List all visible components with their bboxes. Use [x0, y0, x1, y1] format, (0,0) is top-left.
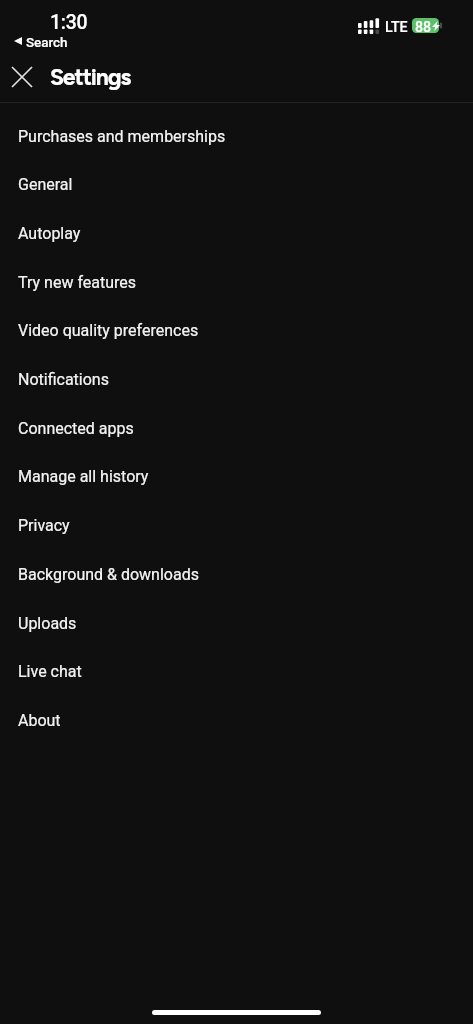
staticText: Privacy — [18, 516, 70, 535]
button[interactable]: Manage all history — [0, 452, 473, 501]
staticText: General — [18, 175, 73, 194]
staticText: About — [18, 711, 61, 730]
staticText: Settings — [50, 63, 131, 91]
button[interactable]: Uploads — [0, 599, 473, 648]
staticText: Try new features — [18, 273, 137, 292]
staticText: Background & downloads — [18, 565, 199, 584]
button[interactable]: Connected apps — [0, 404, 473, 453]
staticText: Connected apps — [18, 419, 134, 438]
staticText: Search — [26, 35, 68, 51]
button[interactable]: Autoplay — [0, 209, 473, 258]
staticText: 1:30 — [50, 11, 88, 34]
staticText: Purchases and memberships — [18, 127, 226, 146]
button[interactable]: General — [0, 160, 473, 209]
staticText: LTE — [385, 19, 408, 36]
button[interactable]: Try new features — [0, 258, 473, 307]
button[interactable]: Settings — [44, 54, 473, 99]
staticText: 88 — [415, 19, 432, 34]
staticText: Video quality preferences — [18, 321, 199, 340]
button[interactable]: Close — [0, 54, 44, 99]
button[interactable]: About — [0, 696, 473, 745]
button[interactable]: Background & downloads — [0, 550, 473, 599]
staticText: Notifications — [18, 370, 109, 389]
staticText: Manage all history — [18, 467, 149, 486]
button[interactable]: Purchases and memberships — [0, 112, 473, 161]
staticText: Uploads — [18, 614, 77, 633]
staticText: Autoplay — [18, 224, 81, 243]
button[interactable]: Video quality preferences — [0, 306, 473, 355]
button[interactable]: Privacy — [0, 501, 473, 550]
staticText: Live chat — [18, 662, 82, 681]
button[interactable]: Notifications — [0, 355, 473, 404]
button[interactable]: Live chat — [0, 647, 473, 696]
